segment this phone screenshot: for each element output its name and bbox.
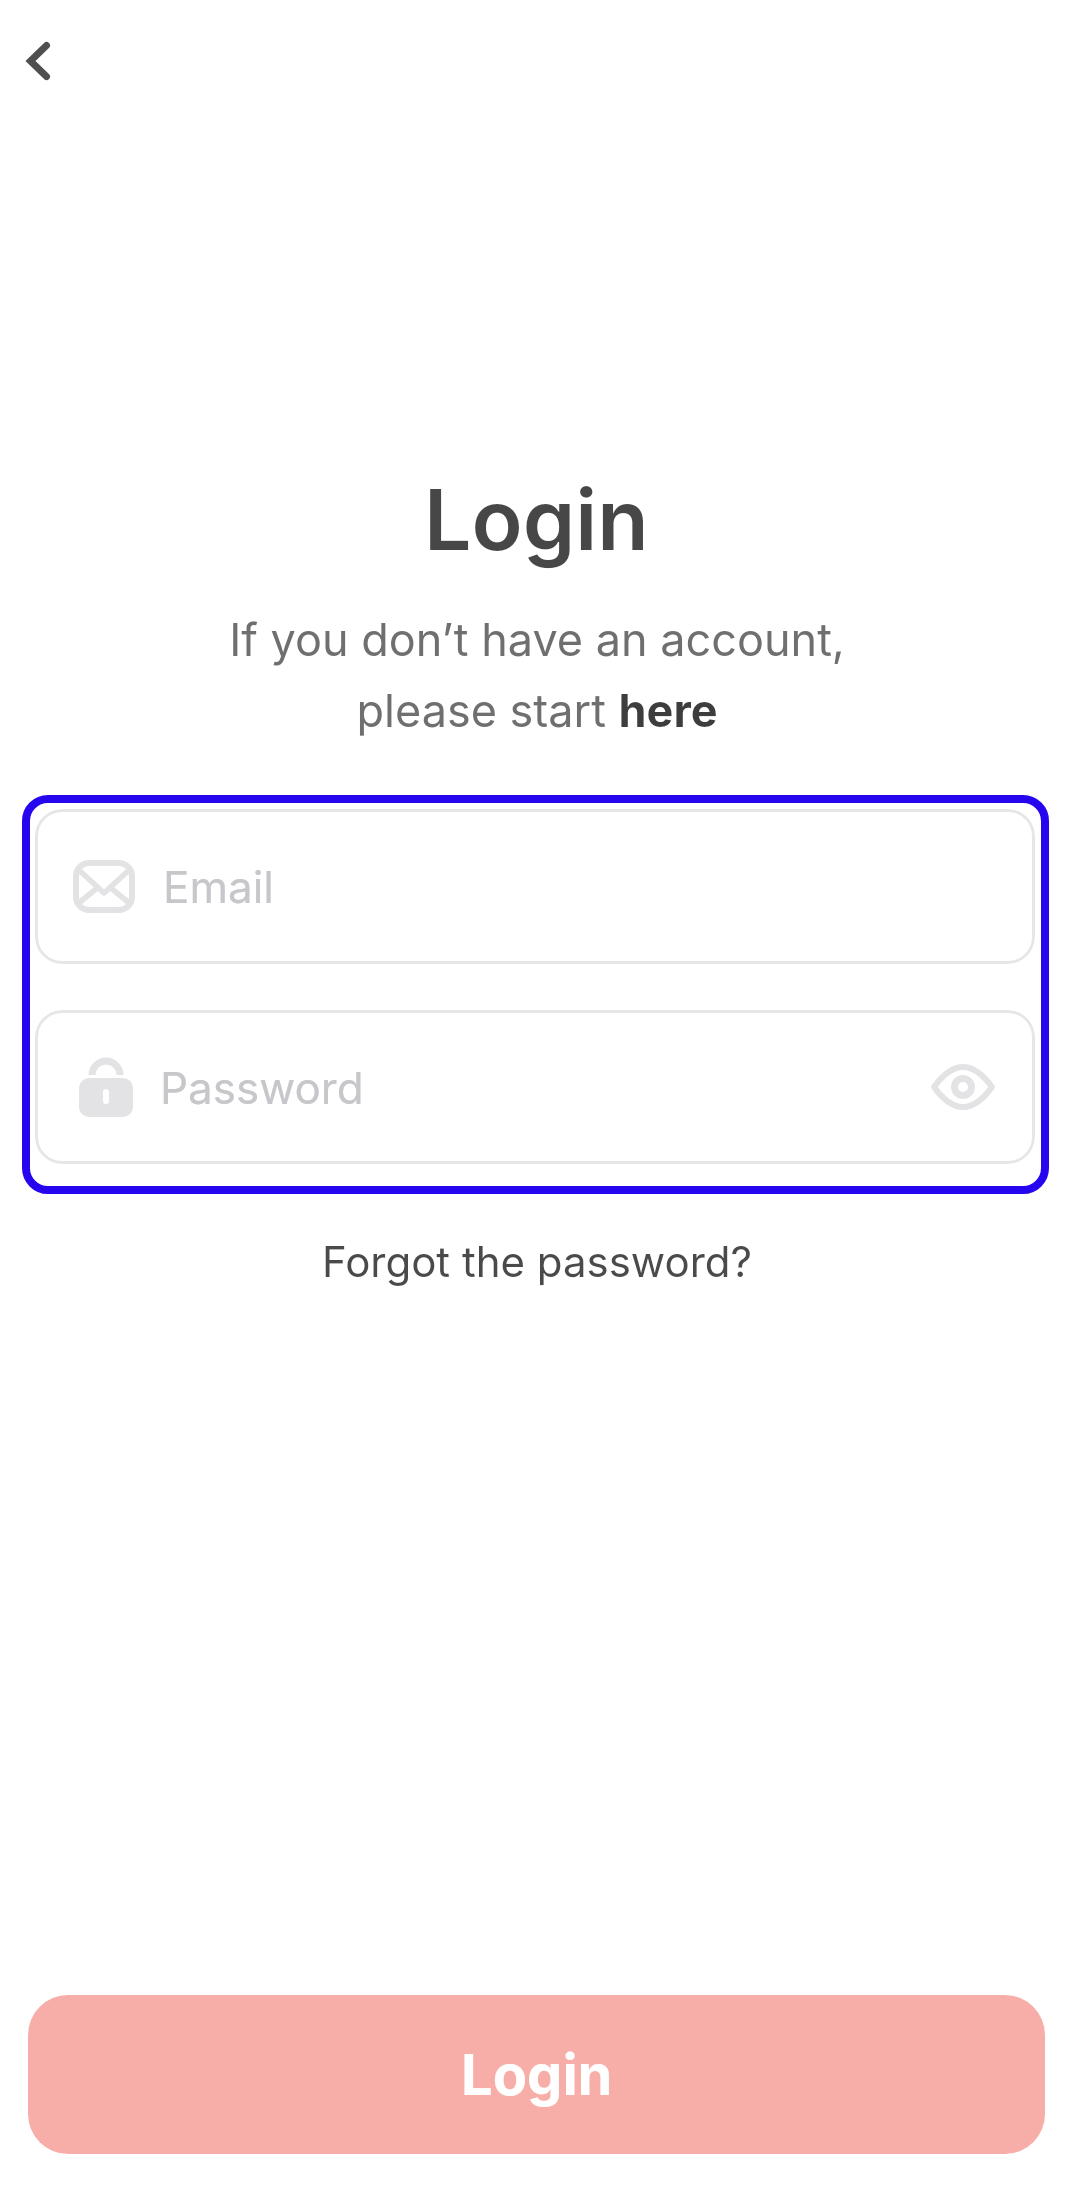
button[interactable]: Login xyxy=(28,1995,1045,2154)
button[interactable]: Forgot the password? xyxy=(322,1236,752,1287)
staticText: Password xyxy=(160,1061,364,1114)
staticText: Login xyxy=(461,2041,613,2109)
button[interactable]: Password xyxy=(35,1010,1035,1164)
staticText: Login xyxy=(424,469,649,571)
button[interactable]: Email xyxy=(35,809,1035,964)
staticText: Email xyxy=(163,860,275,913)
staticText: If you don’t have an account, please sta… xyxy=(229,612,845,738)
button[interactable] xyxy=(10,28,74,92)
